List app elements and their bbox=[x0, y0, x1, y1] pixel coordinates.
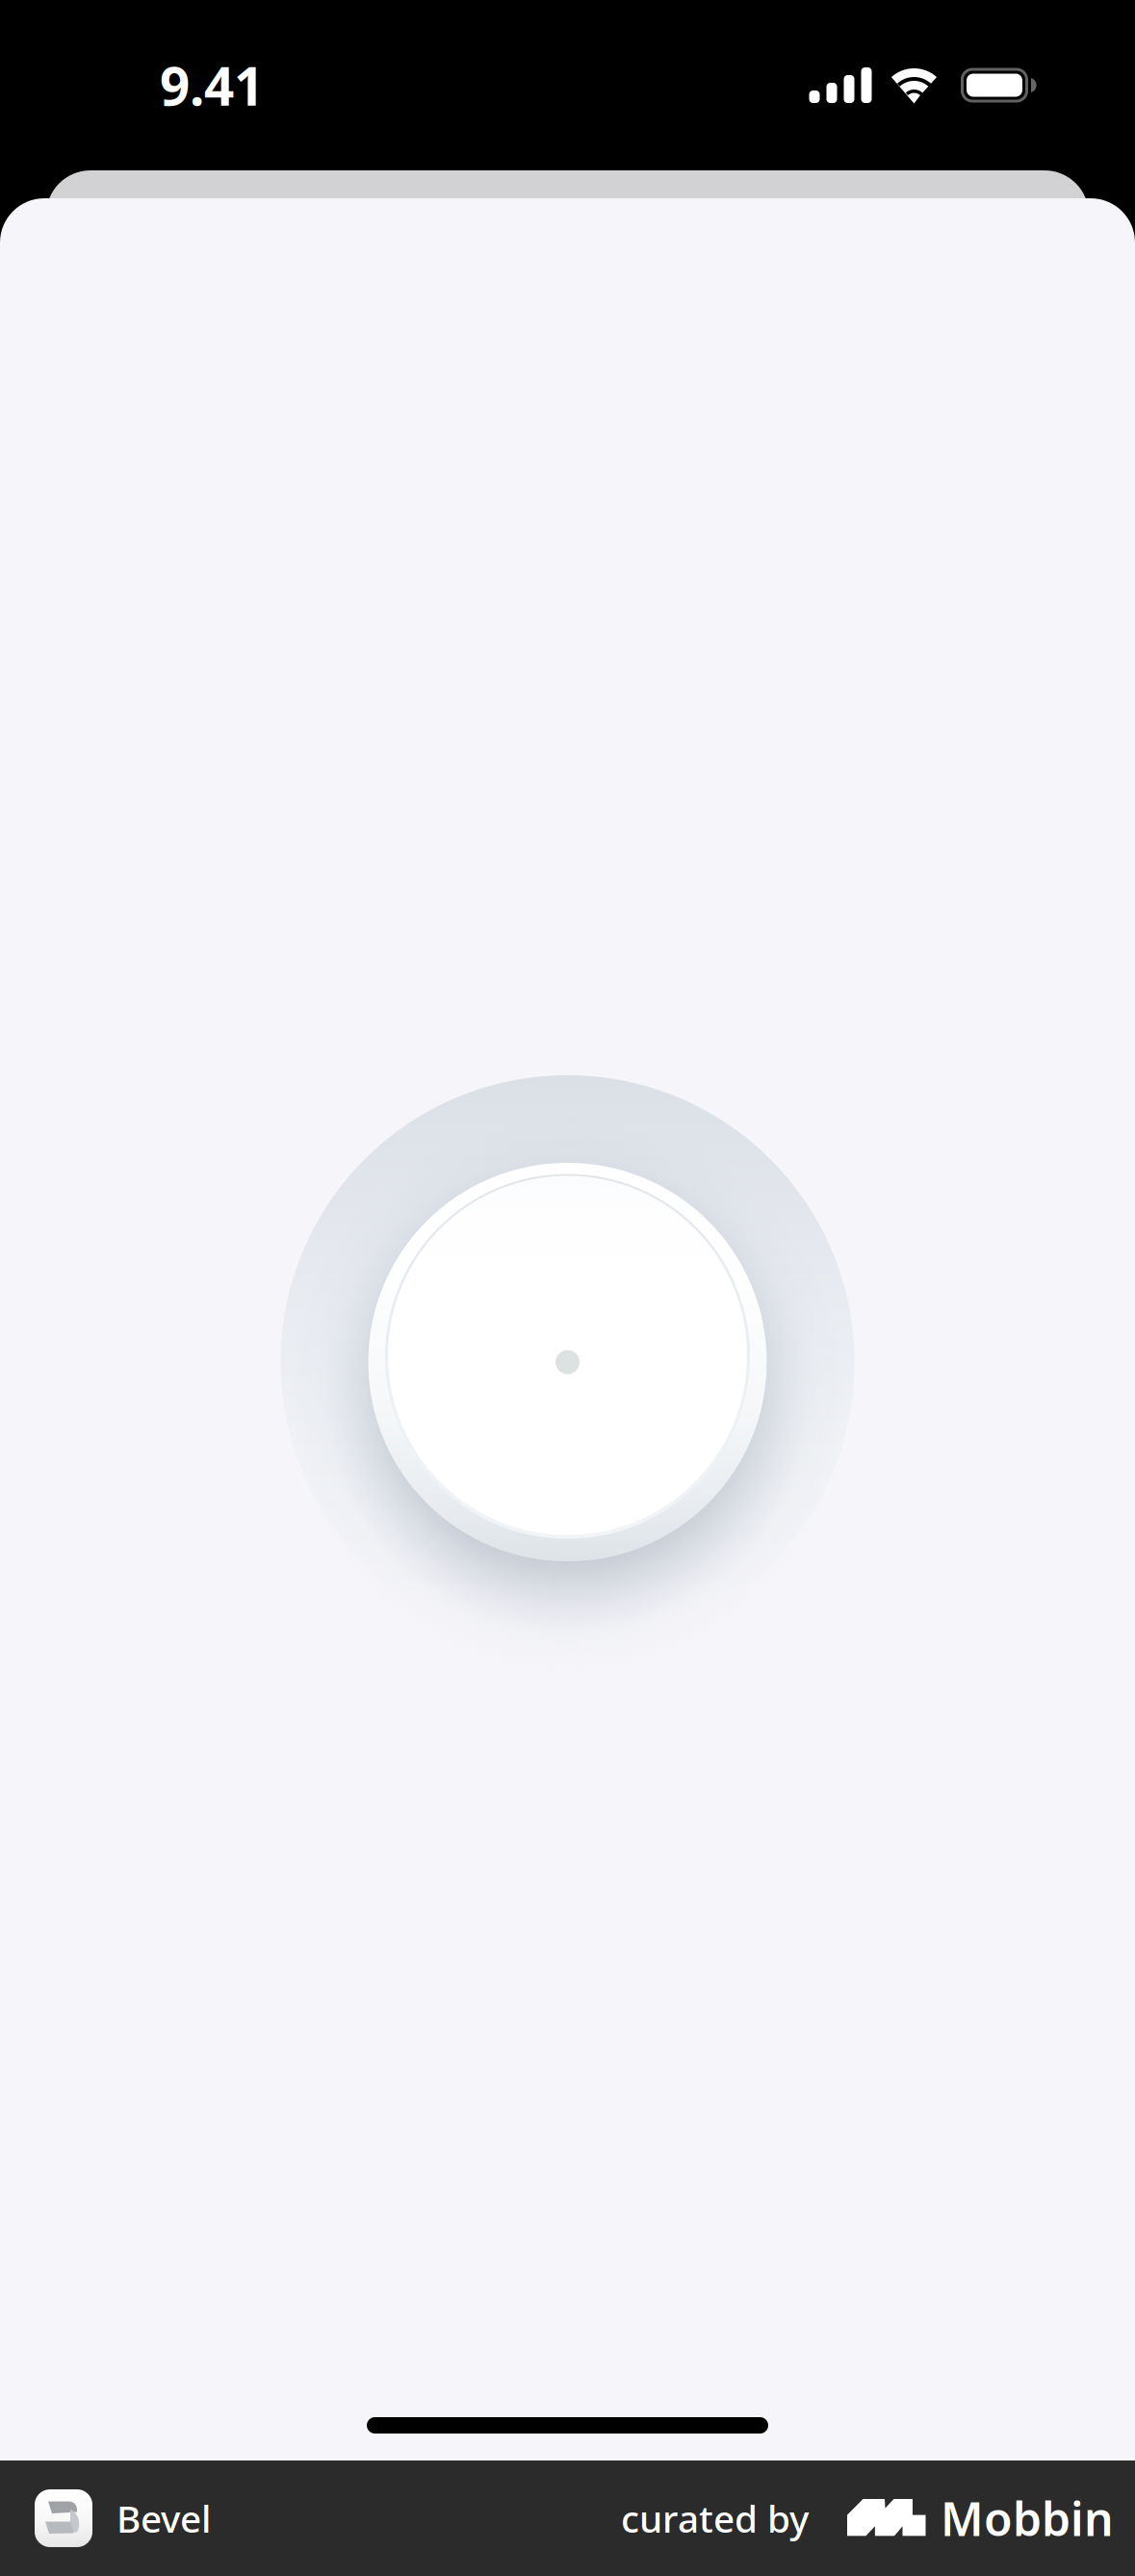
staticText: Mobbin bbox=[941, 2488, 1114, 2549]
staticText: Bevel bbox=[116, 2494, 211, 2543]
staticText: curated by bbox=[621, 2494, 809, 2543]
staticText: 9.41 bbox=[160, 50, 264, 120]
